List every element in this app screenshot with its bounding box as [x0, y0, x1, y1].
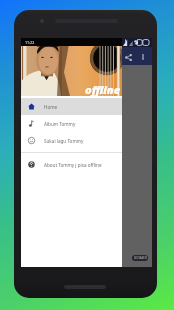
button[interactable]: GO BACK — [132, 255, 148, 261]
button[interactable]: Sukai lagu Tommy — [21, 132, 122, 149]
staticText: GO BACK — [134, 256, 147, 260]
staticText: About Tommy j pisa offline — [44, 162, 102, 168]
staticText: offline — [85, 82, 121, 97]
button[interactable]: More options — [136, 50, 150, 64]
button[interactable]: Share — [121, 50, 135, 64]
button[interactable]: Album Tommy — [21, 115, 122, 132]
staticText: Album Tommy — [44, 121, 76, 127]
button[interactable]: Home — [21, 98, 122, 115]
button[interactable]: About Tommy j pisa offline — [21, 156, 122, 173]
staticText: Home — [44, 104, 58, 110]
staticText: Sukai lagu Tommy — [44, 138, 84, 144]
staticText: 11:22 — [25, 40, 35, 45]
